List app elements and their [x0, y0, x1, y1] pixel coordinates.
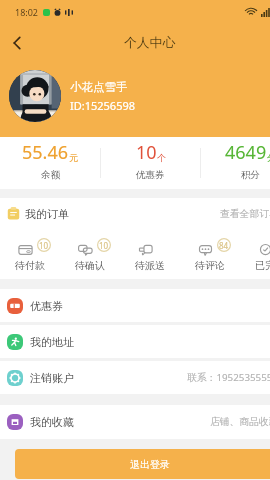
staticText: 余额: [41, 169, 60, 181]
staticText: 个人中心: [124, 35, 176, 51]
staticText: ID:15256598: [70, 98, 136, 113]
button[interactable]: 我的地址: [7, 325, 270, 358]
staticText: 待付款: [15, 259, 45, 272]
staticText: 注销账户: [30, 371, 74, 385]
staticText: 优惠券: [30, 299, 63, 313]
staticText: 联系：19525355555: [187, 371, 270, 384]
button[interactable]: 我的订单: [7, 198, 270, 229]
staticText: 我的收藏: [30, 415, 74, 429]
button[interactable]: 待派送: [120, 229, 180, 272]
staticText: 已完成: [255, 259, 270, 272]
button[interactable]: 退出登录: [15, 449, 270, 479]
staticText: 店铺、商品收藏: [210, 416, 270, 428]
button[interactable]: 10: [60, 229, 120, 272]
button[interactable]: 84: [180, 229, 240, 272]
staticText: 待评论: [195, 259, 225, 272]
staticText: 退出登录: [130, 458, 170, 471]
staticText: 待派送: [135, 259, 165, 272]
staticText: 积分: [241, 169, 260, 181]
staticText: 18:02: [15, 6, 39, 18]
staticText: 10: [39, 240, 49, 251]
staticText: 10: [136, 140, 157, 165]
staticText: 元: [69, 152, 78, 163]
button[interactable]: 我的收藏: [7, 405, 270, 439]
staticText: 55.46: [22, 140, 69, 165]
staticText: 待确认: [75, 259, 105, 272]
staticText: 我的地址: [30, 335, 74, 349]
staticText: 84: [219, 240, 229, 251]
button[interactable]: 已完成: [240, 229, 270, 272]
button[interactable]: 注销账户: [7, 361, 270, 394]
staticText: 10: [99, 240, 109, 251]
staticText: 优惠券: [136, 169, 165, 181]
staticText: 我的订单: [25, 207, 69, 221]
button[interactable]: Back: [0, 26, 34, 60]
staticText: 4649: [225, 140, 267, 165]
staticText: 个: [157, 152, 166, 163]
button[interactable]: 优惠券: [7, 289, 270, 322]
staticText: 分: [267, 152, 270, 163]
staticText: 小花点雪手: [70, 80, 128, 94]
button[interactable]: 10: [0, 229, 60, 272]
staticText: 查看全部订单: [220, 208, 270, 220]
